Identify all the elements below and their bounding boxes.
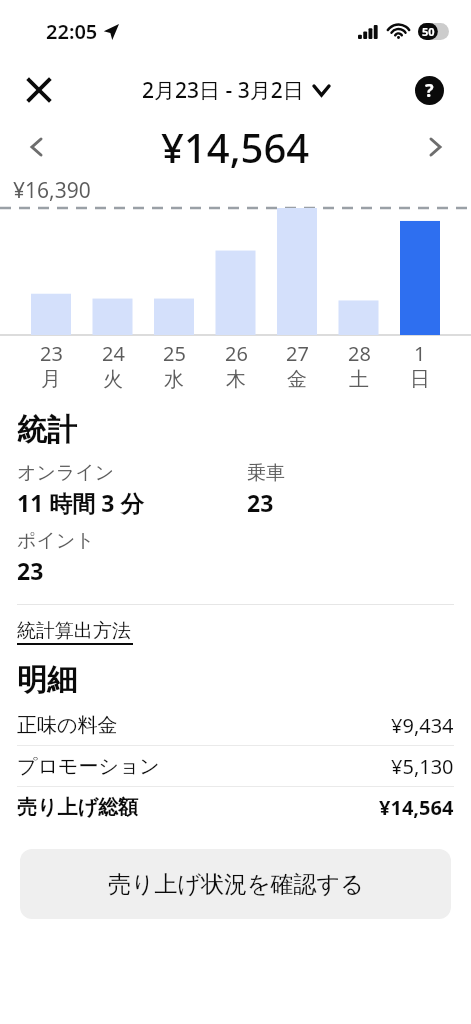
staticText: 23: [17, 555, 44, 586]
button[interactable]: 売り上げ状況を確認する: [20, 849, 451, 919]
staticText: 乗車: [247, 461, 285, 485]
staticText: 統計算出方法: [17, 619, 131, 643]
staticText: ?: [425, 78, 434, 103]
staticText: ¥14,564: [379, 794, 454, 821]
staticText: 正味の料金: [17, 713, 118, 738]
button[interactable]: Previous period: [18, 129, 54, 165]
button[interactable]: 正味の料金: [17, 705, 454, 745]
staticText: 売り上げ総額: [17, 795, 138, 820]
staticText: 金: [287, 367, 307, 391]
staticText: 木: [226, 367, 246, 391]
staticText: 日: [410, 367, 430, 391]
staticText: 土: [349, 367, 369, 391]
staticText: 24: [102, 340, 125, 367]
button[interactable]: 統計算出方法: [17, 619, 133, 645]
staticText: 25: [163, 340, 186, 367]
staticText: ¥9,434: [391, 712, 454, 739]
button[interactable]: Next period: [417, 129, 453, 165]
staticText: オンライン: [17, 461, 115, 485]
staticText: 27: [286, 340, 309, 367]
staticText: プロモーション: [17, 754, 160, 779]
staticText: ¥14,564: [161, 120, 310, 174]
staticText: 11 時間 3 分: [17, 487, 144, 518]
staticText: 統計: [17, 411, 77, 449]
staticText: 22:05: [46, 18, 98, 45]
button[interactable]: プロモーション: [17, 746, 454, 786]
staticText: ¥16,390: [13, 176, 91, 205]
staticText: 23: [40, 340, 63, 367]
staticText: 1: [414, 340, 426, 367]
staticText: 26: [225, 340, 248, 367]
staticText: 23: [247, 487, 274, 518]
button[interactable]: 売り上げ総額: [17, 787, 454, 827]
staticText: ポイント: [17, 529, 95, 553]
staticText: 明細: [17, 661, 77, 699]
staticText: 2月23日 - 3月2日: [142, 76, 304, 105]
staticText: 火: [103, 367, 123, 391]
staticText: 50: [422, 24, 435, 39]
staticText: 水: [164, 367, 184, 391]
button[interactable]: Close: [20, 71, 58, 109]
staticText: 売り上げ状況を確認する: [108, 870, 364, 899]
staticText: 月: [41, 367, 61, 391]
staticText: 28: [348, 340, 371, 367]
button[interactable]: 2月23日 - 3月2日: [142, 76, 329, 105]
staticText: ¥5,130: [391, 753, 454, 780]
button[interactable]: Help: [412, 73, 446, 107]
